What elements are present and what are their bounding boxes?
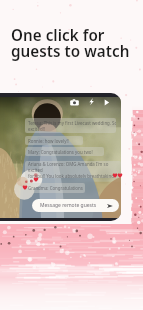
button[interactable]: Grandma: Congratulations xyxy=(25,183,85,193)
button[interactable]: Play xyxy=(102,98,111,107)
button[interactable]: Flash xyxy=(87,97,96,106)
staticText: Message remote guests xyxy=(40,202,97,209)
button[interactable]: Mary: Congratulations you two! xyxy=(25,147,104,156)
button[interactable]: Ronnie: how lovely!! xyxy=(25,136,83,145)
staticText: Mary: Congratulations you two! xyxy=(28,149,93,155)
button[interactable]: Message remote guests xyxy=(32,199,119,212)
button[interactable]: Camera xyxy=(70,98,79,107)
other: Send xyxy=(106,202,114,210)
staticText: Ariana & Lorenzo: OMG Amanda I'm so exci… xyxy=(28,161,121,178)
staticText: Ronnie: how lovely!! xyxy=(28,138,69,144)
staticText: Grandma: Congratulations xyxy=(28,185,83,191)
button[interactable]: Ariana & Lorenzo: OMG Amanda I'm so exci… xyxy=(25,161,121,178)
staticText: Teresa: This is my first Livecast weddin… xyxy=(28,120,116,132)
staticText: One click for guests to watch xyxy=(11,25,130,61)
button[interactable]: Teresa: This is my first Livecast weddin… xyxy=(25,118,116,133)
